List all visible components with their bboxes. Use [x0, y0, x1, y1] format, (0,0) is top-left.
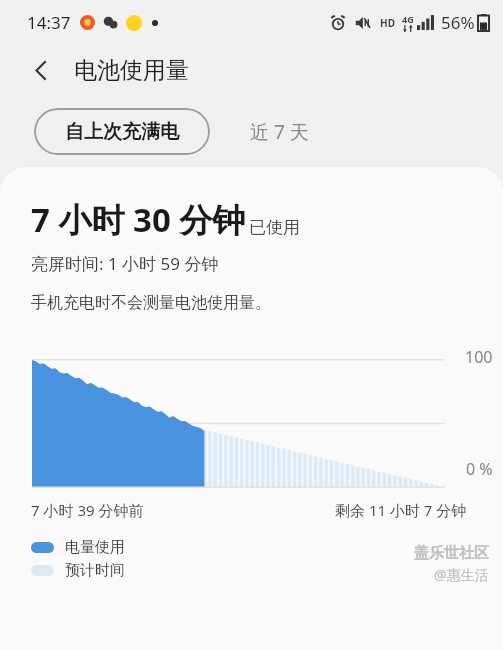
staticText: @惠生活 [434, 565, 489, 584]
staticText: 7 小时 30 分钟 [31, 197, 246, 242]
staticText: HD [380, 16, 395, 30]
staticText: 亮屏时间: 1 小时 59 分钟 [31, 252, 219, 275]
staticText: 电量使用 [65, 538, 125, 557]
staticText: 手机充电时不会测量电池使用量。 [31, 293, 271, 313]
staticText: 近 7 天 [250, 119, 309, 145]
staticText: 电池使用量 [74, 56, 189, 85]
staticText: 已使用 [249, 217, 300, 238]
button[interactable]: 近 7 天 [242, 108, 317, 155]
staticText: 7 小时 39 分钟前 [31, 500, 144, 520]
button[interactable]: 自上次充满电 [34, 108, 210, 155]
button[interactable]: Back [20, 49, 62, 91]
staticText: 自上次充满电 [65, 120, 179, 144]
staticText: 100 [465, 346, 493, 368]
staticText: 14:37 [27, 11, 71, 34]
staticText: 0 % [466, 458, 493, 480]
staticText: 剩余 11 小时 7 分钟 [335, 500, 467, 520]
staticText: 预计时间 [65, 561, 125, 580]
staticText: 56% [441, 11, 475, 34]
staticText: 盖乐世社区 [414, 544, 489, 563]
staticText: 4G [402, 13, 414, 25]
